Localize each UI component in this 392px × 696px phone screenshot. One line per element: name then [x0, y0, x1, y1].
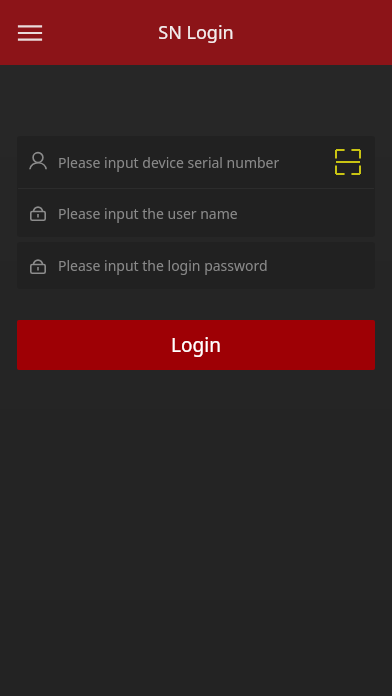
- button[interactable]: Please input the login password: [17, 242, 375, 289]
- staticText: Please input device serial number: [58, 153, 280, 172]
- button[interactable]: Login: [17, 320, 375, 370]
- button[interactable]: Please input the user name: [17, 189, 375, 237]
- staticText: Login: [171, 332, 221, 358]
- staticText: Please input the login password: [58, 256, 268, 275]
- button[interactable]: Please input device serial number: [17, 136, 375, 188]
- button[interactable]: Menu: [8, 11, 52, 55]
- button[interactable]: Scan QR code: [326, 140, 370, 184]
- staticText: Please input the user name: [58, 204, 238, 223]
- staticText: SN Login: [158, 20, 234, 45]
